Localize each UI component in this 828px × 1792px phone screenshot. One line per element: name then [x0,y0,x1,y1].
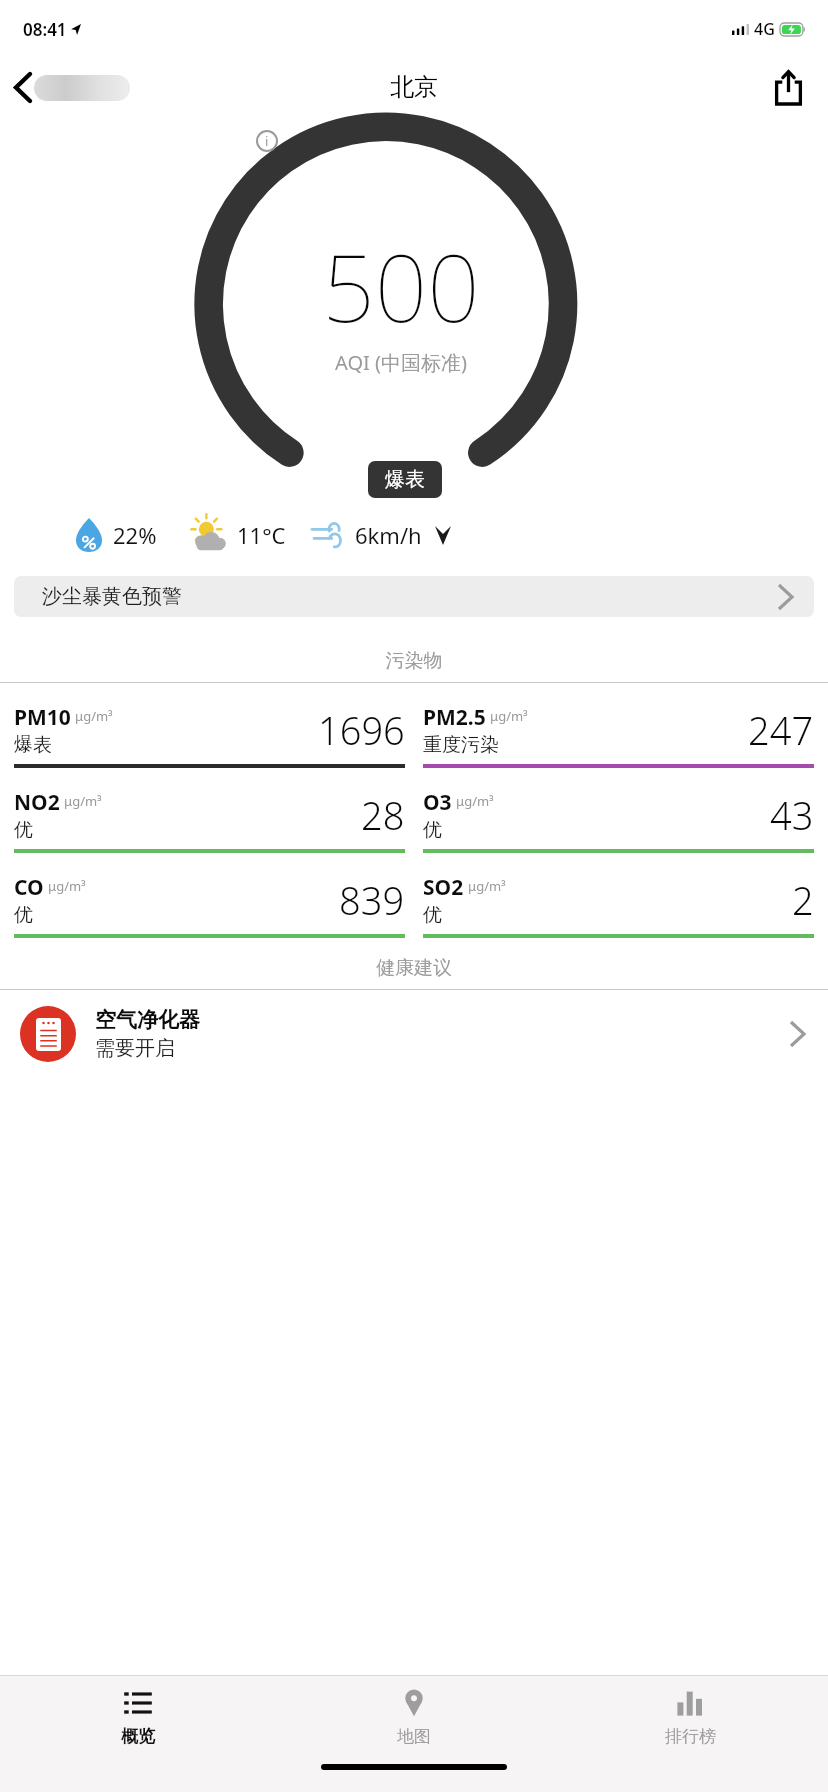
staticText: i [265,132,269,150]
staticText: PM10 [14,703,71,732]
button[interactable]: SO2 [423,853,814,938]
staticText: 28 [361,789,405,841]
staticText: 22% [113,520,157,550]
staticText: 概览 [121,1726,155,1747]
staticText: 839 [339,874,405,926]
staticText: 08:41 [23,18,67,41]
staticText: μg/m³ [468,877,506,895]
staticText: 污染物 [0,649,828,673]
staticText: 43 [770,789,814,841]
staticText: CO [14,873,44,902]
staticText: 4G [754,18,775,40]
staticText: 6km/h [355,520,422,550]
staticText: 健康建议 [0,956,828,980]
button[interactable]: 爆表 [368,461,442,498]
button[interactable]: PM10 [14,683,405,768]
staticText: 11°C [237,520,286,550]
staticText: μg/m³ [456,792,494,810]
button[interactable]: 概览 [0,1676,276,1758]
button[interactable]: NO2 [14,768,405,853]
button[interactable]: PM2.5 [423,683,814,768]
button[interactable]: Info [256,130,278,152]
staticText: 排行榜 [665,1726,716,1747]
staticText: 优 [14,818,33,842]
staticText: NO2 [14,788,60,817]
staticText: 爆表 [14,733,52,757]
staticText: 2 [792,874,814,926]
button[interactable]: 排行榜 [552,1676,828,1758]
button[interactable]: 沙尘暴黄色预警 [14,576,814,617]
staticText: μg/m³ [490,707,528,725]
staticText: μg/m³ [64,792,102,810]
staticText: SO2 [423,873,464,902]
staticText: 500 [322,224,480,349]
staticText: 空气净化器 [95,1007,200,1033]
staticText: 优 [423,818,442,842]
staticText: μg/m³ [75,707,113,725]
staticText: AQI (中国标准) [335,349,467,376]
button[interactable]: Back [8,68,138,107]
button[interactable]: 地图 [276,1676,552,1758]
staticText: 需要开启 [95,1036,175,1061]
button[interactable]: O3 [423,768,814,853]
staticText: μg/m³ [48,877,86,895]
staticText: 地图 [397,1726,431,1747]
button[interactable]: Share [769,65,808,110]
staticText: 1696 [318,704,405,756]
button[interactable]: 空气净化器 [0,990,828,1078]
staticText: 北京 [390,72,438,102]
staticText: 优 [14,903,33,927]
staticText: 沙尘暴黄色预警 [42,584,182,609]
staticText: 优 [423,903,442,927]
staticText: O3 [423,788,452,817]
button[interactable]: CO [14,853,405,938]
staticText: PM2.5 [423,703,486,732]
staticText: 重度污染 [423,733,499,757]
staticText: 爆表 [385,467,425,492]
staticText: 247 [748,704,814,756]
